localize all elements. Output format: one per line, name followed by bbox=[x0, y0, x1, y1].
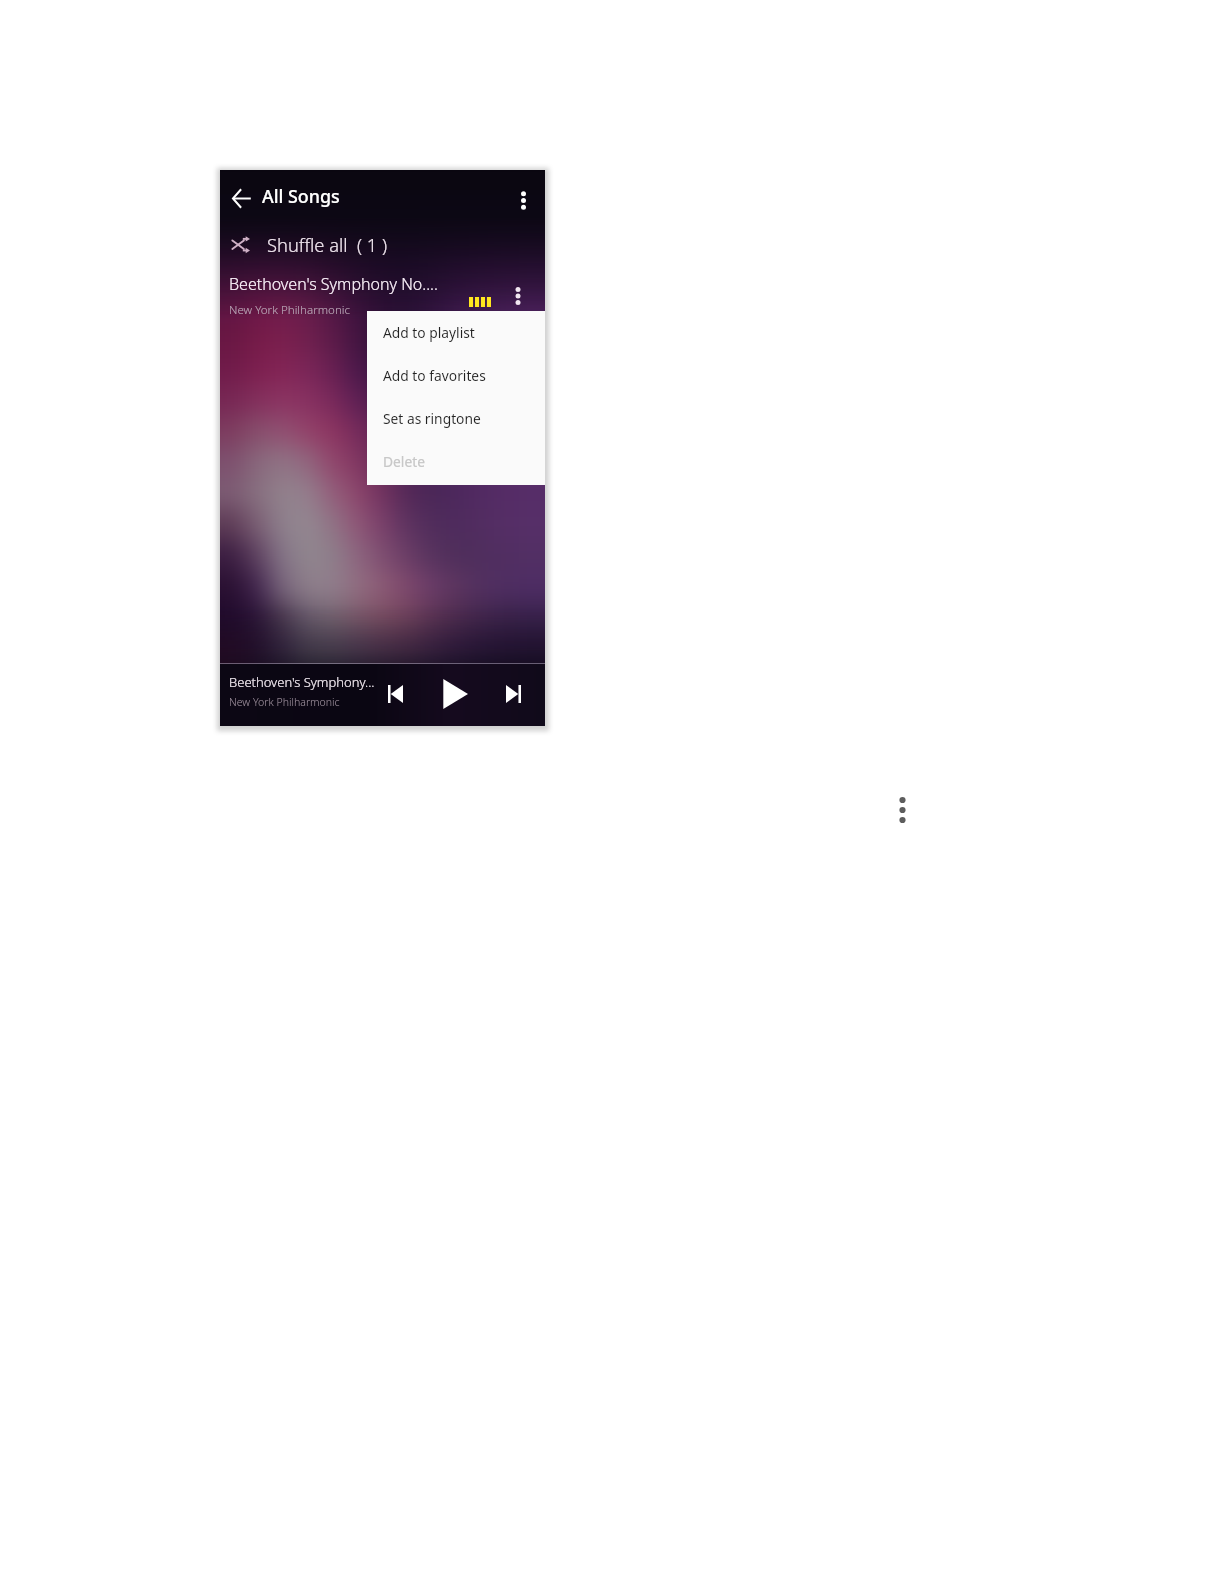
button[interactable]: More options bbox=[888, 796, 916, 824]
button[interactable]: Play bbox=[436, 675, 474, 713]
staticText: Set as ringtone bbox=[383, 409, 481, 428]
staticText: Add to playlist bbox=[383, 323, 475, 342]
button[interactable]: Add to playlist bbox=[367, 311, 545, 354]
button[interactable]: Set as ringtone bbox=[367, 397, 545, 440]
staticText: New York Philharmonic bbox=[229, 695, 340, 709]
button[interactable]: Next bbox=[497, 678, 529, 710]
button[interactable]: Back bbox=[225, 181, 257, 215]
staticText: Shuffle all ( 1 ) bbox=[267, 232, 388, 257]
button[interactable]: Add to favorites bbox=[367, 354, 545, 397]
button[interactable]: Previous bbox=[379, 678, 411, 710]
staticText: Add to favorites bbox=[383, 366, 486, 385]
button[interactable] bbox=[220, 268, 545, 326]
button[interactable]: Song options bbox=[502, 280, 534, 312]
staticText: Delete bbox=[383, 452, 425, 471]
button[interactable] bbox=[220, 222, 545, 266]
staticText: Beethoven's Symphony No.... bbox=[229, 273, 438, 295]
staticText: Beethoven's Symphony... bbox=[229, 673, 375, 691]
staticText: All Songs bbox=[262, 184, 340, 208]
button[interactable]: Delete bbox=[367, 440, 545, 483]
staticText: New York Philharmonic bbox=[229, 302, 351, 318]
button[interactable]: More options bbox=[507, 184, 539, 216]
